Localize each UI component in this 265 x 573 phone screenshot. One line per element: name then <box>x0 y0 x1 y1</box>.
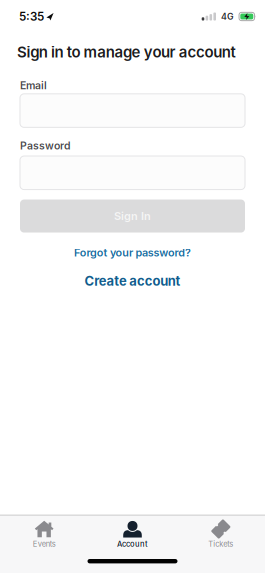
button[interactable]: Account <box>88 520 177 549</box>
button[interactable]: Sign In <box>0 200 265 233</box>
staticText: Forgot your password? <box>74 246 191 259</box>
staticText: 5:35 <box>19 9 44 23</box>
staticText: Events <box>33 539 56 549</box>
staticText: Tickets <box>208 539 233 549</box>
staticText: 4G <box>221 11 234 22</box>
staticText: Password <box>20 139 71 152</box>
button[interactable]: Password <box>0 156 265 190</box>
button[interactable]: Tickets <box>177 520 265 549</box>
staticText: Email <box>20 79 47 92</box>
staticText: Account <box>117 539 148 549</box>
button[interactable]: Forgot your password? <box>0 246 265 259</box>
staticText: Sign In <box>114 209 151 223</box>
staticText: Create account <box>84 273 180 289</box>
staticText: Sign in to manage your account <box>17 43 235 61</box>
button[interactable]: Events <box>0 520 88 549</box>
button[interactable]: Create account <box>0 273 265 289</box>
